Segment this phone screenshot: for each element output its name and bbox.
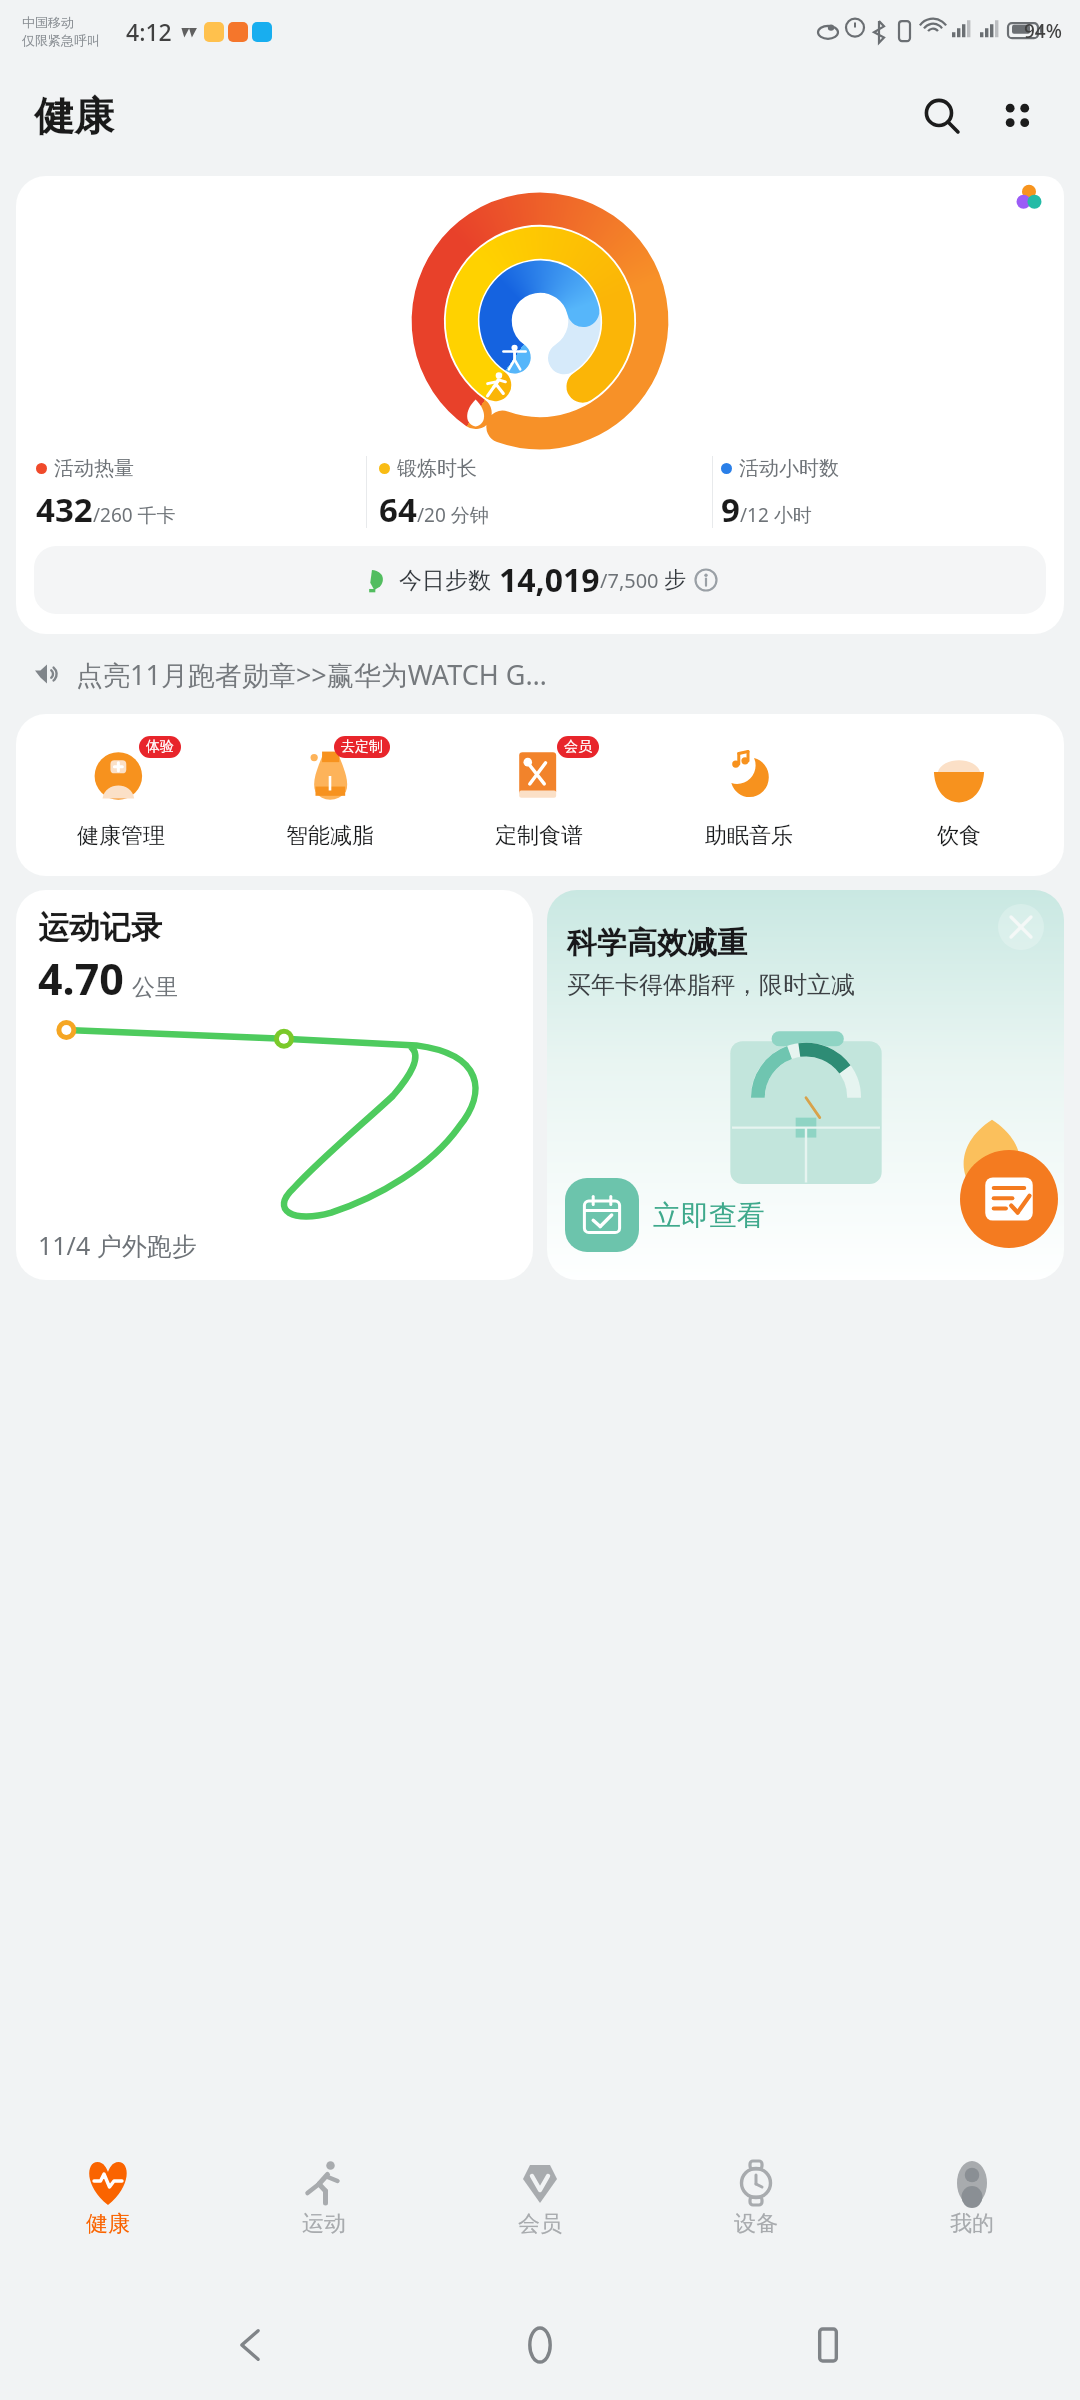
staticText: 运动记录	[38, 908, 162, 947]
staticText: 会员	[564, 738, 592, 756]
button[interactable]: More options	[986, 84, 1050, 148]
staticText: 9	[721, 487, 740, 532]
staticText: 智能减脂	[286, 822, 374, 850]
staticText: 94%	[1024, 18, 1062, 44]
staticText: 定制食谱	[495, 822, 583, 850]
button[interactable]: Close	[998, 904, 1044, 950]
staticText: 4:12	[126, 16, 172, 47]
staticText: 去定制	[341, 738, 383, 756]
staticText: 买年卡得体脂秤，限时立减	[567, 970, 855, 1000]
button[interactable]: 去定制	[225, 738, 434, 850]
button[interactable]: 助眠音乐	[644, 738, 854, 850]
staticText: 4.70	[38, 949, 124, 1008]
staticText: 设备	[734, 2210, 778, 2238]
staticText: 立即查看	[653, 1198, 765, 1233]
staticText: 运动	[302, 2210, 346, 2238]
staticText: 健康管理	[77, 822, 165, 850]
button[interactable]: Health data	[994, 176, 1064, 218]
button[interactable]: 设备	[648, 2142, 864, 2290]
staticText: 会员	[518, 2210, 562, 2238]
button[interactable]: 饮食	[854, 738, 1064, 850]
button[interactable]: 活动热量	[16, 176, 1064, 634]
button[interactable]: 我的	[864, 2142, 1080, 2290]
staticText: 科学高效减重	[567, 924, 747, 962]
button[interactable]: 点亮11月跑者勋章>>赢华为WATCH G…	[32, 644, 1048, 704]
staticText: 活动小时数	[739, 456, 839, 481]
staticText: 我的	[950, 2210, 994, 2238]
staticText: /20 分钟	[417, 502, 489, 528]
staticText: 助眠音乐	[705, 822, 793, 850]
staticText: 11/4 户外跑步	[38, 1228, 197, 1262]
staticText: 432	[36, 487, 93, 532]
button[interactable]: 会员	[432, 2142, 648, 2290]
button[interactable]: Search	[910, 84, 974, 148]
button[interactable]: View plan	[960, 1150, 1058, 1248]
staticText: 体验	[146, 738, 174, 756]
staticText: 步	[664, 566, 686, 594]
button[interactable]: 运动	[216, 2142, 432, 2290]
button[interactable]: 体验	[16, 738, 225, 850]
staticText: /7,500	[600, 567, 659, 594]
staticText: /12 小时	[740, 502, 812, 528]
staticText: 14,019	[499, 558, 600, 602]
button[interactable]: 会员	[434, 738, 644, 850]
button[interactable]: Back	[216, 2309, 288, 2381]
staticText: 点亮11月跑者勋章>>赢华为WATCH G…	[76, 656, 1048, 693]
staticText: 中国移动	[22, 14, 74, 30]
staticText: 64	[379, 487, 417, 532]
staticText: 健康	[86, 2210, 130, 2238]
staticText: 活动热量	[54, 456, 134, 481]
staticText: 仅限紧急呼叫	[22, 32, 100, 48]
staticText: 饮食	[937, 822, 981, 850]
staticText: 今日步数	[399, 566, 491, 595]
staticText: /260 千卡	[93, 502, 176, 528]
button[interactable]: 今日步数	[34, 546, 1046, 614]
button[interactable]: 运动记录	[16, 890, 533, 1280]
staticText: 公里	[132, 973, 178, 1002]
staticText: 健康	[34, 91, 114, 141]
staticText: 锻炼时长	[397, 456, 477, 481]
button[interactable]: Home	[504, 2309, 576, 2381]
button[interactable]: Recents	[792, 2309, 864, 2381]
button[interactable]: 科学高效减重	[547, 890, 1064, 1280]
button[interactable]: 健康	[0, 2142, 216, 2290]
